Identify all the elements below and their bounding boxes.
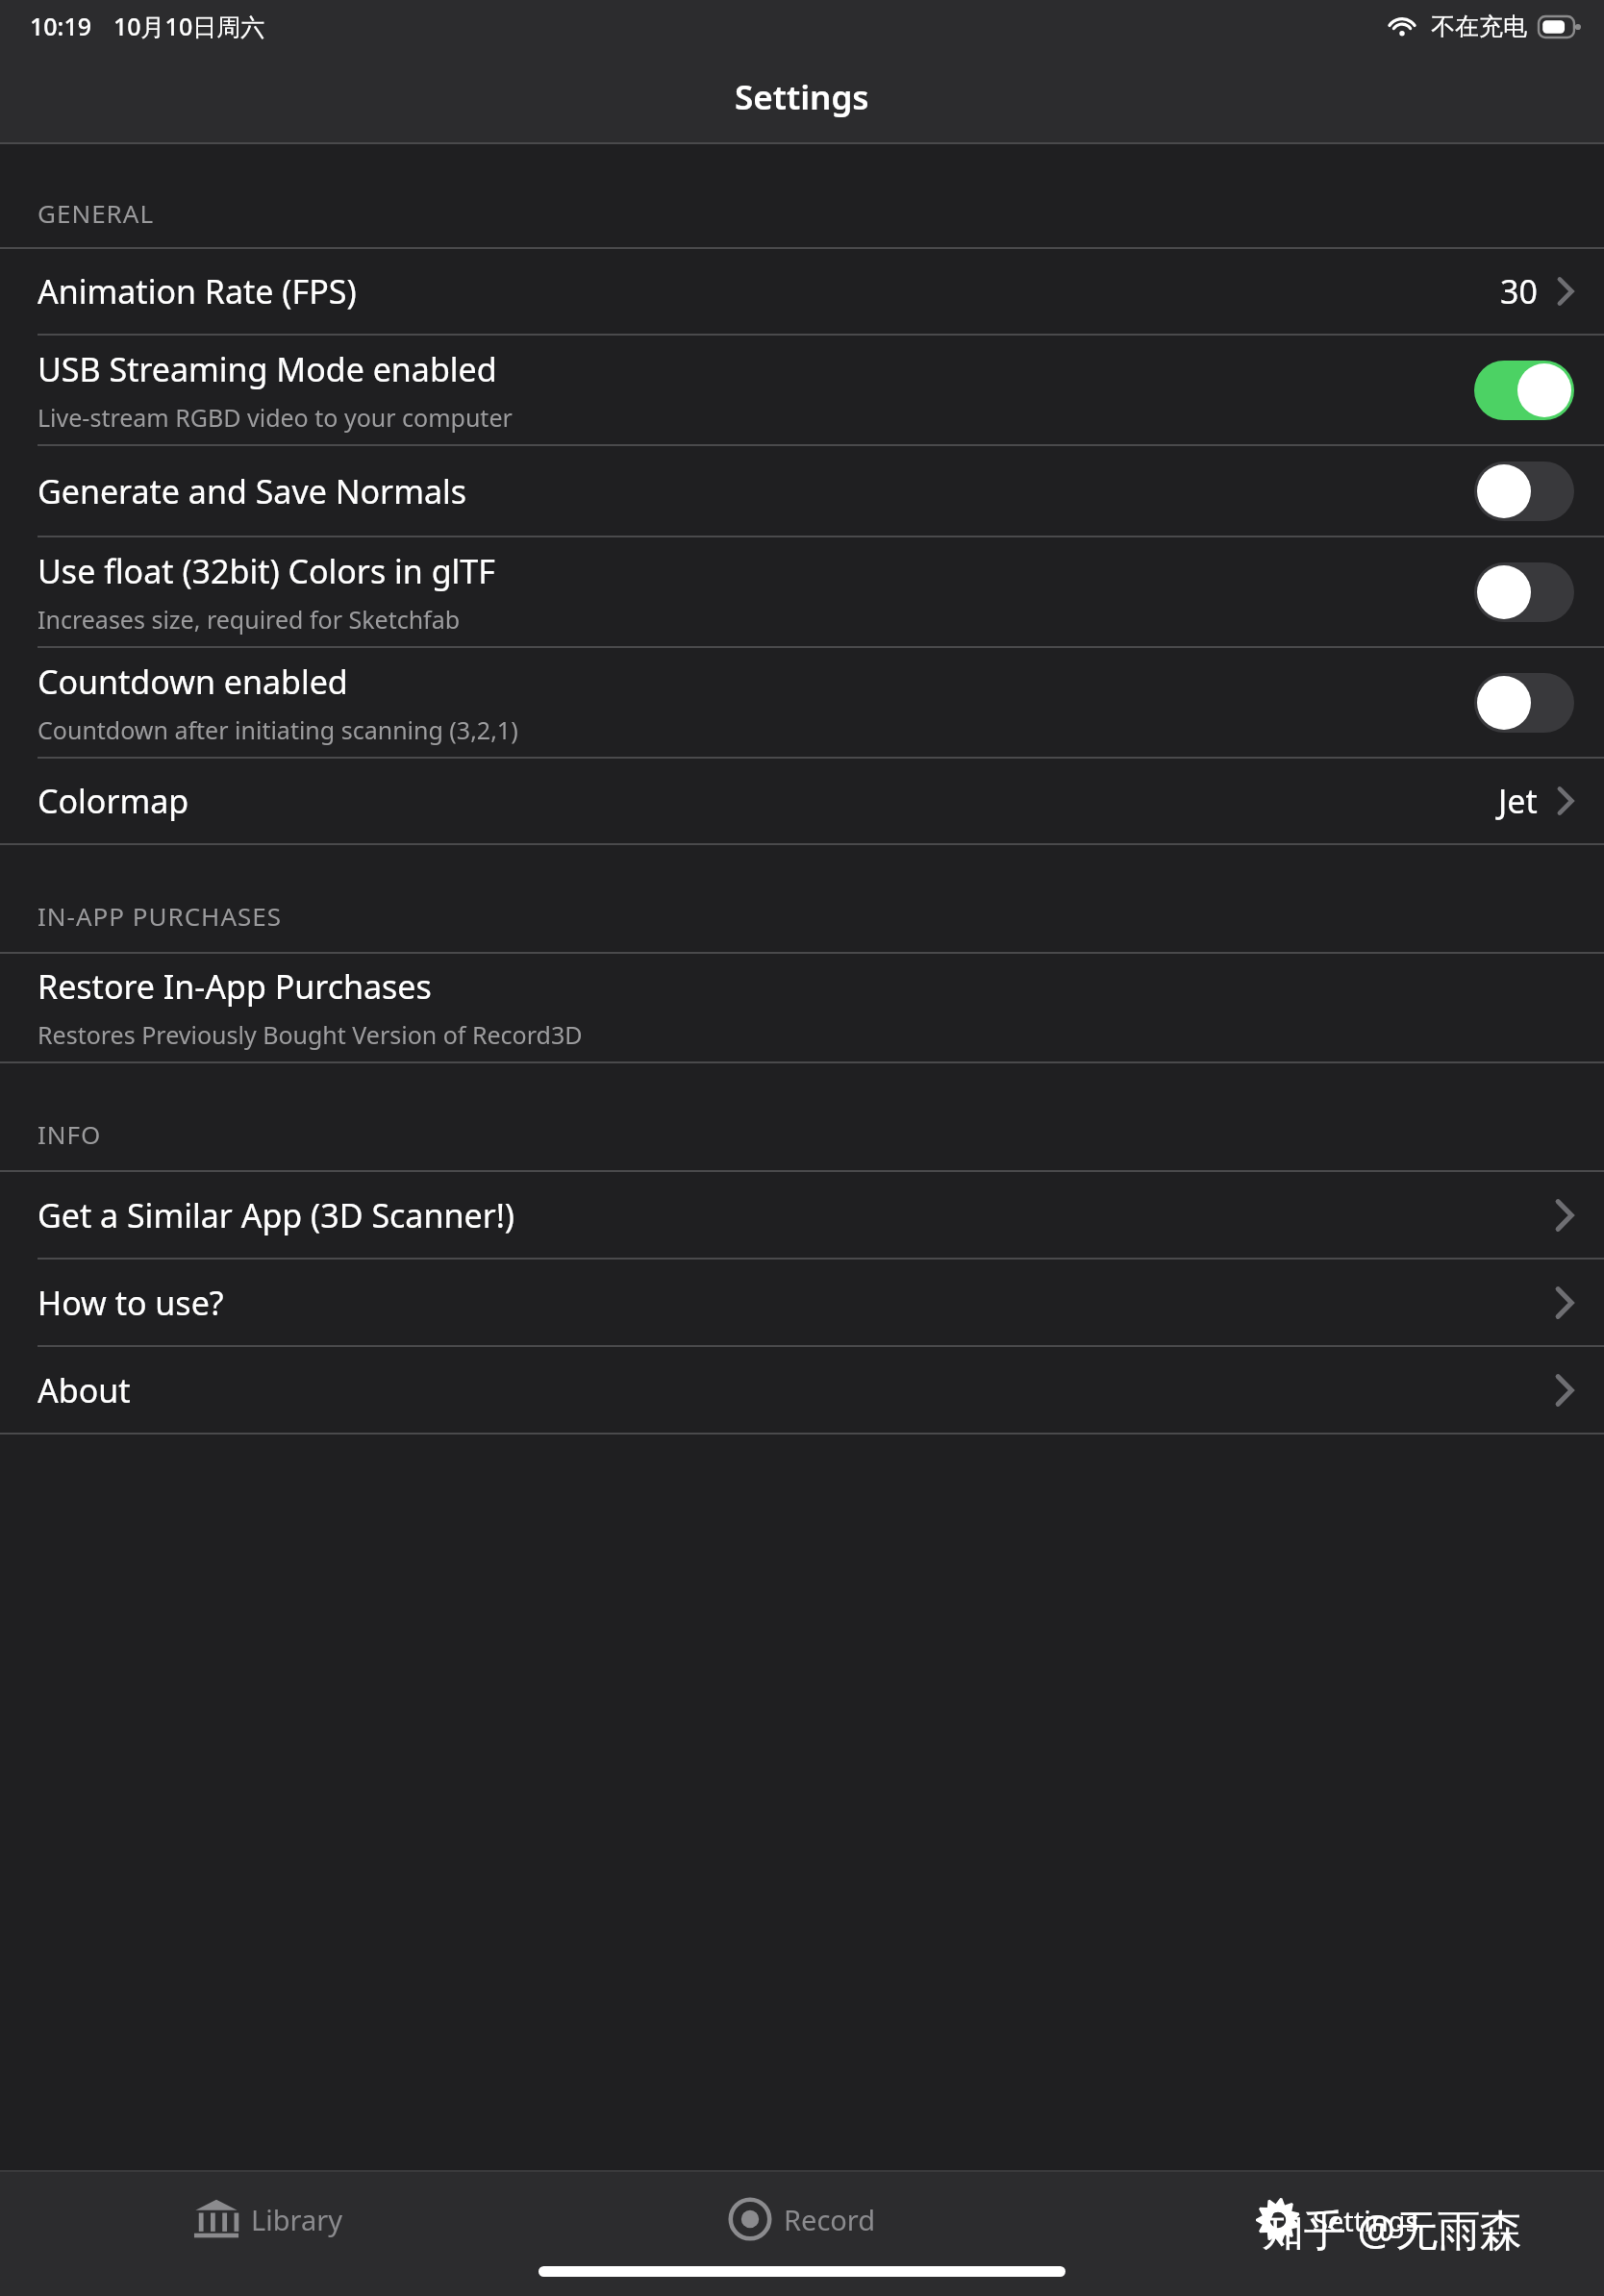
button[interactable]: Generate and Save Normals (0, 446, 1604, 536)
staticText: Settings (735, 74, 869, 120)
button[interactable]: Record (535, 2172, 1069, 2296)
button[interactable]: Off (1474, 562, 1574, 622)
staticText: GENERAL (38, 196, 155, 230)
staticText: IN-APP PURCHASES (38, 899, 283, 933)
staticText: 30 (1500, 269, 1538, 313)
button[interactable]: Use float (32bit) Colors in glTF (0, 537, 1604, 646)
staticText: About (38, 1368, 131, 1412)
staticText: 知乎 @无雨森 (1262, 2200, 1522, 2258)
button[interactable]: About (0, 1347, 1604, 1433)
button[interactable]: USB Streaming Mode enabled (0, 336, 1604, 444)
staticText: Countdown after initiating scanning (3,2… (38, 713, 518, 746)
staticText: USB Streaming Mode enabled (38, 347, 497, 391)
staticText: 10月10日周六 (113, 10, 265, 42)
staticText: Get a Similar App (3D Scanner!) (38, 1193, 515, 1237)
staticText: Animation Rate (FPS) (38, 269, 357, 313)
staticText: Settings (1313, 2202, 1419, 2239)
button[interactable]: Off (1474, 673, 1574, 733)
staticText: Generate and Save Normals (38, 469, 467, 513)
staticText: 不在充电 (1431, 12, 1527, 41)
button[interactable]: Countdown enabled (0, 648, 1604, 757)
staticText: Colormap (38, 779, 189, 823)
button[interactable]: Library (0, 2172, 535, 2296)
button[interactable]: Off (1474, 462, 1574, 521)
button[interactable]: Get a Similar App (3D Scanner!) (0, 1172, 1604, 1258)
staticText: Restore In-App Purchases (38, 964, 432, 1009)
staticText: Jet (1498, 779, 1538, 823)
button[interactable]: Settings (1069, 2172, 1604, 2296)
button[interactable]: How to use? (0, 1260, 1604, 1345)
staticText: Restores Previously Bought Version of Re… (38, 1018, 583, 1051)
staticText: Countdown enabled (38, 660, 348, 704)
button[interactable]: Animation Rate (FPS) (0, 249, 1604, 334)
staticText: INFO (38, 1117, 102, 1151)
button[interactable]: Restore In-App Purchases (0, 954, 1604, 1061)
staticText: Record (784, 2201, 876, 2238)
staticText: Library (251, 2201, 342, 2238)
button[interactable]: Colormap (0, 759, 1604, 843)
staticText: 10:19 (30, 10, 92, 42)
staticText: Increases size, required for Sketchfab (38, 603, 461, 636)
staticText: How to use? (38, 1281, 224, 1325)
button[interactable]: On (1474, 361, 1574, 420)
staticText: Live-stream RGBD video to your computer (38, 401, 513, 434)
staticText: Use float (32bit) Colors in glTF (38, 549, 495, 593)
